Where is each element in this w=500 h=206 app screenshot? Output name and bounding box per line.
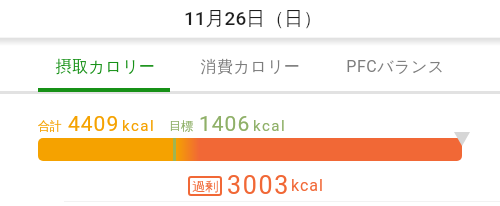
staticText: kcal [291, 176, 324, 195]
button[interactable]: PFCバランス [323, 42, 468, 92]
staticText: kcal [122, 117, 156, 135]
staticText: 目標 [169, 118, 193, 133]
staticText: 消費カロリー [200, 57, 301, 77]
staticText: 11月26日（日） [184, 7, 323, 31]
staticText: PFCバランス [346, 57, 445, 77]
staticText: 4409 [68, 112, 120, 137]
staticText: 3003 [227, 171, 291, 200]
staticText: 合計 [38, 118, 62, 133]
staticText: 過剰 [192, 178, 218, 194]
staticText: kcal [253, 117, 287, 135]
button[interactable]: 摂取カロリー [33, 42, 178, 92]
button[interactable]: 消費カロリー [178, 42, 323, 92]
staticText: 1406 [199, 112, 251, 137]
staticText: 摂取カロリー [55, 57, 156, 77]
